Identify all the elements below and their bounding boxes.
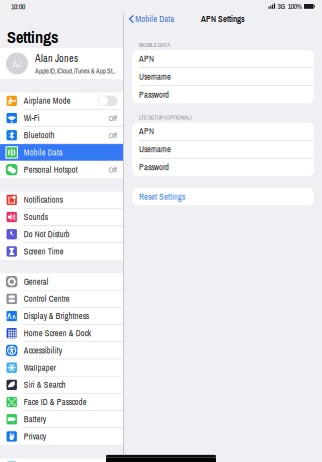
staticText: Face ID & Passcode	[24, 396, 87, 408]
staticText: Wi-Fi	[24, 112, 40, 124]
staticText: Airplane Mode	[24, 95, 71, 106]
button[interactable]: Password	[132, 86, 314, 103]
staticText: Reset Settings	[139, 191, 185, 202]
staticText: Notifications	[24, 194, 63, 205]
button[interactable]: APN	[132, 50, 314, 67]
staticText: Off	[108, 164, 117, 175]
button[interactable]: Face ID & Passcode	[0, 394, 123, 410]
staticText: Password	[139, 162, 169, 173]
staticText: Username	[139, 144, 171, 155]
button[interactable]: Accessibility	[0, 342, 123, 359]
staticText: Accessibility	[24, 345, 62, 356]
staticText: Mobile Data	[24, 147, 63, 158]
button[interactable]: APN	[132, 122, 314, 140]
staticText: Display & Brightness	[24, 310, 89, 322]
staticText: Control Centre	[24, 293, 70, 304]
staticText: Privacy	[24, 431, 46, 442]
staticText: APN	[139, 53, 154, 64]
staticText: Password	[139, 89, 169, 100]
staticText: 3G	[277, 2, 285, 11]
button[interactable]: Privacy	[0, 428, 123, 445]
button[interactable]: Airplane Mode	[0, 92, 123, 109]
staticText: AJ	[12, 57, 21, 70]
staticText: Screen Time	[24, 246, 64, 257]
button[interactable]: App Store	[0, 458, 123, 462]
staticText: Apple ID, iCloud, iTunes & App St...	[35, 67, 115, 75]
staticText: 100%	[288, 2, 302, 11]
button[interactable]: Wallpaper	[0, 359, 123, 376]
staticText: Sounds	[24, 211, 48, 223]
button[interactable]: Mobile Data	[0, 144, 123, 161]
button[interactable]: Bluetooth	[0, 127, 123, 144]
staticText: MOBILE DATA	[139, 41, 170, 49]
staticText: Do Not Disturb	[24, 229, 70, 240]
button[interactable]: Password	[132, 158, 314, 176]
staticText: Username	[139, 71, 171, 82]
button[interactable]: Reset Settings	[132, 188, 314, 205]
button[interactable]: General	[0, 273, 123, 290]
button[interactable]: Display & Brightness	[0, 308, 123, 324]
staticText: General	[24, 276, 49, 287]
staticText: Personal Hotspot	[24, 164, 78, 175]
button[interactable]: Do Not Disturb	[0, 226, 123, 243]
staticText: Wallpaper	[24, 362, 56, 373]
button[interactable]: Screen Time	[0, 243, 123, 260]
staticText: APN	[139, 126, 154, 137]
button[interactable]: Battery	[0, 411, 123, 428]
button[interactable]: Wi-Fi	[0, 110, 123, 126]
button[interactable]: Username	[132, 140, 314, 158]
staticText: Home Screen & Dock	[24, 328, 91, 339]
button[interactable]: AJ	[0, 48, 123, 79]
button[interactable]: Home Screen & Dock	[0, 325, 123, 342]
staticText: Mobile Data	[135, 13, 174, 25]
staticText: Off	[108, 130, 117, 141]
staticText: Battery	[24, 414, 46, 425]
button[interactable]: Notifications	[0, 191, 123, 208]
staticText: Siri & Search	[24, 379, 66, 390]
button[interactable]: Control Centre	[0, 290, 123, 307]
staticText: Alan Jones	[35, 51, 78, 65]
button[interactable]: Username	[132, 68, 314, 85]
staticText: Settings	[7, 26, 58, 48]
button[interactable]: Personal Hotspot	[0, 161, 123, 178]
button[interactable]: Siri & Search	[0, 376, 123, 393]
staticText: 10:00	[11, 1, 25, 12]
staticText: Off	[108, 113, 117, 123]
button[interactable]: Mobile Data	[124, 13, 174, 25]
button[interactable]: Sounds	[0, 209, 123, 225]
staticText: LTE SETUP (OPTIONAL)	[139, 113, 192, 121]
staticText: Bluetooth	[24, 130, 55, 141]
staticText: APN Settings	[201, 13, 245, 25]
